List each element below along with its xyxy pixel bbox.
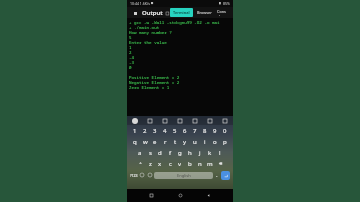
staticText: -4 bbox=[129, 55, 135, 60]
button[interactable]: Clipboard bbox=[147, 118, 153, 124]
button[interactable]: Backspace bbox=[215, 159, 225, 168]
button[interactable]: Shift bbox=[135, 159, 145, 168]
button[interactable]: Terminal bbox=[170, 8, 193, 17]
staticText: 10:44 1.6K/s bbox=[130, 1, 150, 6]
button[interactable]: Browser bbox=[196, 8, 213, 17]
button[interactable]: j bbox=[195, 148, 205, 157]
button[interactable]: i bbox=[200, 137, 210, 146]
staticText: 6 bbox=[183, 127, 187, 135]
staticText: English bbox=[177, 173, 191, 178]
button[interactable]: 8 bbox=[200, 126, 210, 135]
button[interactable]: English bbox=[154, 172, 213, 179]
button[interactable]: 1 bbox=[130, 126, 140, 135]
staticText: 0 bbox=[129, 65, 132, 70]
button[interactable]: 9 bbox=[210, 126, 220, 135]
button[interactable]: s bbox=[145, 148, 155, 157]
button[interactable]: 5 bbox=[170, 126, 180, 135]
staticText: t bbox=[174, 138, 177, 146]
staticText: b bbox=[188, 160, 192, 168]
button[interactable]: 7 bbox=[190, 126, 200, 135]
button[interactable]: Language bbox=[146, 171, 154, 179]
button[interactable]: x bbox=[155, 159, 165, 168]
staticText: Console bbox=[217, 9, 227, 16]
button[interactable]: h bbox=[185, 148, 195, 157]
button[interactable]: 0 bbox=[220, 126, 230, 135]
button[interactable]: Voice bbox=[222, 118, 228, 124]
button[interactable]: m bbox=[205, 159, 215, 168]
button[interactable]: t bbox=[170, 137, 180, 146]
button[interactable]: 2 bbox=[140, 126, 150, 135]
button[interactable]: c bbox=[165, 159, 175, 168]
staticText: Terminal bbox=[173, 10, 190, 15]
staticText: q bbox=[133, 138, 137, 146]
staticText: 5 bbox=[173, 127, 177, 135]
staticText: h bbox=[188, 149, 192, 157]
staticText: g bbox=[178, 149, 182, 157]
staticText: ?123 bbox=[130, 173, 138, 178]
staticText: 0 bbox=[223, 127, 227, 135]
staticText: r bbox=[164, 138, 167, 146]
staticText: Output bbox=[142, 9, 163, 17]
button[interactable]: w bbox=[140, 137, 150, 146]
button[interactable]: Period bbox=[213, 171, 221, 179]
button[interactable]: 6 bbox=[180, 126, 190, 135]
staticText: l bbox=[219, 149, 221, 157]
staticText: 9 bbox=[213, 127, 217, 135]
staticText: 2 bbox=[143, 127, 147, 135]
staticText: 8 bbox=[203, 127, 207, 135]
button[interactable]: n bbox=[195, 159, 205, 168]
staticText: k bbox=[208, 149, 212, 157]
staticText: 1 bbox=[129, 45, 132, 50]
staticText: o bbox=[213, 138, 217, 146]
staticText: v bbox=[178, 160, 182, 168]
button[interactable]: k bbox=[205, 148, 215, 157]
button[interactable]: Symbols bbox=[130, 171, 138, 179]
button[interactable]: g bbox=[175, 148, 185, 157]
button[interactable]: Copy bbox=[165, 10, 170, 15]
button[interactable]: 4 bbox=[160, 126, 170, 135]
button[interactable]: u bbox=[190, 137, 200, 146]
button[interactable]: l bbox=[215, 148, 225, 157]
staticText: -3 bbox=[129, 60, 135, 65]
button[interactable]: GIF bbox=[162, 118, 168, 124]
button[interactable]: o bbox=[210, 137, 220, 146]
button[interactable]: Enter bbox=[221, 171, 230, 180]
staticText: Positive Element = 2 bbox=[129, 75, 180, 80]
button[interactable]: Translate bbox=[192, 118, 198, 124]
button[interactable]: e bbox=[150, 137, 160, 146]
button[interactable]: z bbox=[145, 159, 155, 168]
staticText: c bbox=[169, 160, 172, 168]
staticText: w bbox=[143, 138, 148, 146]
button[interactable]: Settings bbox=[177, 118, 183, 124]
button[interactable]: b bbox=[185, 159, 195, 168]
button[interactable]: Recents bbox=[147, 191, 156, 200]
staticText: . bbox=[216, 171, 218, 179]
staticText: 3 bbox=[153, 127, 157, 135]
button[interactable]: Back bbox=[204, 191, 213, 200]
button[interactable]: Google bbox=[132, 118, 138, 124]
button[interactable]: q bbox=[130, 137, 140, 146]
staticText: 85% bbox=[223, 1, 230, 6]
staticText: f bbox=[169, 149, 172, 157]
button[interactable]: More bbox=[207, 118, 213, 124]
button[interactable]: v bbox=[175, 159, 185, 168]
staticText: s bbox=[149, 149, 152, 157]
button[interactable]: p bbox=[220, 137, 230, 146]
button[interactable]: Console bbox=[216, 7, 228, 18]
staticText: + gcc -w -Wall -std=gnu99 -O2 -o mai bbox=[129, 20, 220, 25]
button[interactable]: Home bbox=[176, 191, 185, 200]
staticText: 1 bbox=[133, 127, 137, 135]
button[interactable]: 3 bbox=[150, 126, 160, 135]
button[interactable]: f bbox=[165, 148, 175, 157]
staticText: + ./main.out bbox=[129, 25, 160, 30]
staticText: Enter the value bbox=[129, 40, 167, 45]
button[interactable]: Emoji bbox=[138, 171, 146, 179]
button[interactable]: a bbox=[135, 148, 145, 157]
staticText: n bbox=[198, 160, 202, 168]
staticText: 7 bbox=[193, 127, 197, 135]
button[interactable]: d bbox=[155, 148, 165, 157]
button[interactable]: r bbox=[160, 137, 170, 146]
button[interactable]: y bbox=[180, 137, 190, 146]
staticText: 2 bbox=[129, 50, 132, 55]
button[interactable]: Menu bbox=[132, 10, 138, 16]
